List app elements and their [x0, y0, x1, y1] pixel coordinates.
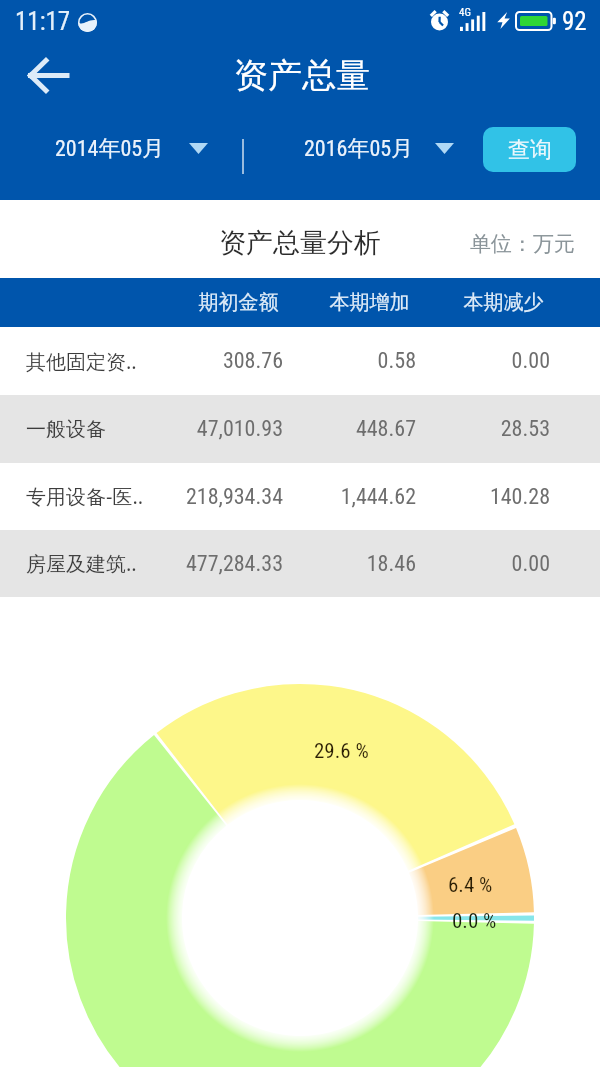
- staticText: 11:17: [15, 7, 71, 36]
- staticText: 18.46: [296, 551, 416, 577]
- staticText: 其他固定资..: [26, 348, 137, 375]
- button[interactable]: 一般设备: [0, 395, 600, 463]
- staticText: 92: [562, 7, 587, 36]
- staticText: 4G: [459, 6, 471, 19]
- staticText: 1,444.62: [296, 484, 416, 510]
- button[interactable]: Back: [16, 45, 80, 105]
- staticText: 单位：万元: [470, 231, 575, 257]
- button[interactable]: 房屋及建筑..: [0, 530, 600, 597]
- staticText: 218,934.34: [153, 484, 283, 510]
- staticText: 2014年05月: [55, 135, 165, 163]
- staticText: 查询: [508, 136, 552, 164]
- button[interactable]: 2016年05月: [293, 123, 468, 187]
- button[interactable]: 其他固定资..: [0, 327, 600, 395]
- staticText: 28.53: [430, 416, 550, 442]
- staticText: 477,284.33: [153, 551, 283, 577]
- staticText: 0.00: [430, 348, 550, 374]
- staticText: 一般设备: [26, 417, 106, 442]
- staticText: 专用设备-医..: [26, 483, 144, 510]
- staticText: 140.28: [430, 484, 550, 510]
- staticText: 308.76: [153, 348, 283, 374]
- staticText: 6.4 %: [448, 873, 493, 898]
- button[interactable]: 专用设备-医..: [0, 463, 600, 530]
- staticText: 资产总量分析: [0, 226, 600, 260]
- staticText: 2016年05月: [304, 135, 414, 163]
- staticText: 448.67: [296, 416, 416, 442]
- button[interactable]: 查询: [483, 127, 576, 172]
- staticText: 本期增加: [302, 290, 437, 315]
- staticText: 房屋及建筑..: [26, 550, 137, 577]
- staticText: 47,010.93: [153, 416, 283, 442]
- staticText: 本期减少: [436, 290, 571, 315]
- staticText: 0.0 %: [452, 909, 497, 934]
- staticText: 期初金额: [156, 290, 321, 315]
- button[interactable]: 2014年05月: [44, 123, 219, 187]
- staticText: 29.6 %: [314, 739, 369, 764]
- staticText: 0.58: [296, 348, 416, 374]
- staticText: 0.00: [430, 551, 550, 577]
- staticText: 资产总量: [2, 54, 600, 97]
